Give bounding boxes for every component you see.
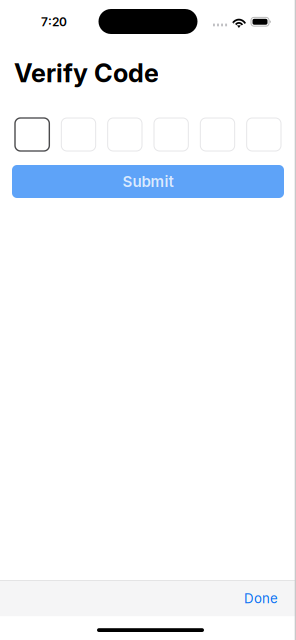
staticText: Done (244, 591, 278, 607)
button[interactable]: Code digit (61, 118, 96, 151)
button[interactable]: Submit (12, 165, 284, 198)
button[interactable]: Done (237, 585, 285, 613)
button[interactable]: Code digit 1, selected (15, 118, 49, 151)
staticText: Submit (122, 172, 173, 191)
button[interactable]: Code digit (247, 118, 281, 151)
staticText: Verify Code (14, 58, 159, 88)
button[interactable]: Code digit (108, 118, 142, 151)
button[interactable]: Code digit (154, 118, 188, 151)
button[interactable]: Code digit (200, 118, 235, 151)
staticText: 7:20 (41, 14, 67, 29)
